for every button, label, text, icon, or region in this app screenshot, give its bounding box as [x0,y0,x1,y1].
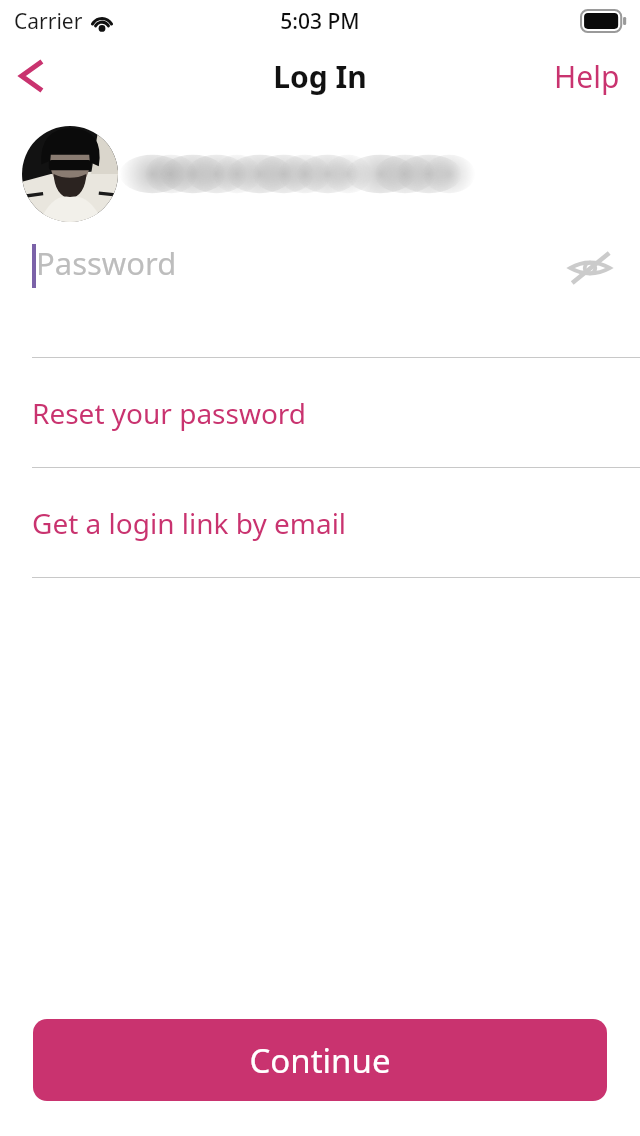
staticText: Log In [273,56,367,97]
button[interactable]: Continue [33,1019,607,1101]
button[interactable]: Get a login link by email [0,468,640,577]
staticText: Reset your password [32,394,307,432]
staticText: Carrier [14,7,83,36]
button[interactable]: Back [0,42,62,110]
button[interactable]: Show password [562,240,618,296]
staticText: Get a login link by email [32,504,347,542]
button[interactable]: Reset your password [0,358,640,467]
staticText: Help [554,56,620,97]
button[interactable]: Help [534,42,640,110]
staticText: 5:03 PM [280,7,360,36]
button[interactable] [0,110,640,238]
button[interactable]: Password [0,238,640,357]
staticText: Continue [249,1038,391,1083]
staticText: Password [36,242,177,284]
